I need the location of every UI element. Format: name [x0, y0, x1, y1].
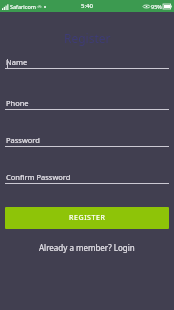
staticText: Phone [6, 98, 29, 108]
staticText: Safaricom [10, 3, 36, 10]
staticText: 5:40 [81, 2, 93, 10]
staticText: Name [6, 57, 28, 67]
staticText: Already a member? Login [39, 242, 135, 253]
staticText: Confirm Password [6, 172, 71, 182]
staticText: REGISTER [69, 213, 106, 223]
staticText: 95% [151, 3, 162, 10]
staticText: Register [64, 30, 111, 46]
staticText: Password [6, 135, 40, 145]
button[interactable]: Already a member? Login [0, 239, 174, 255]
button[interactable]: REGISTER [5, 207, 169, 229]
